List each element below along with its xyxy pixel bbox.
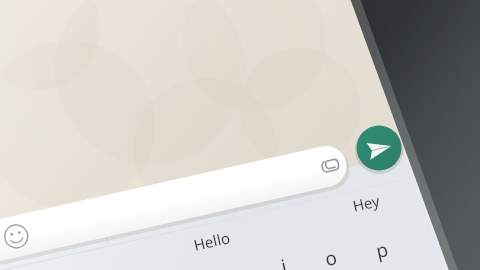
button[interactable]: Hello bbox=[170, 226, 258, 256]
button[interactable]: Hey bbox=[332, 188, 402, 218]
button[interactable]: Send message bbox=[356, 125, 402, 171]
button[interactable]: Emoji bbox=[0, 223, 36, 263]
button[interactable]: Message input field bbox=[24, 178, 306, 244]
button[interactable]: Attach file bbox=[306, 136, 348, 176]
